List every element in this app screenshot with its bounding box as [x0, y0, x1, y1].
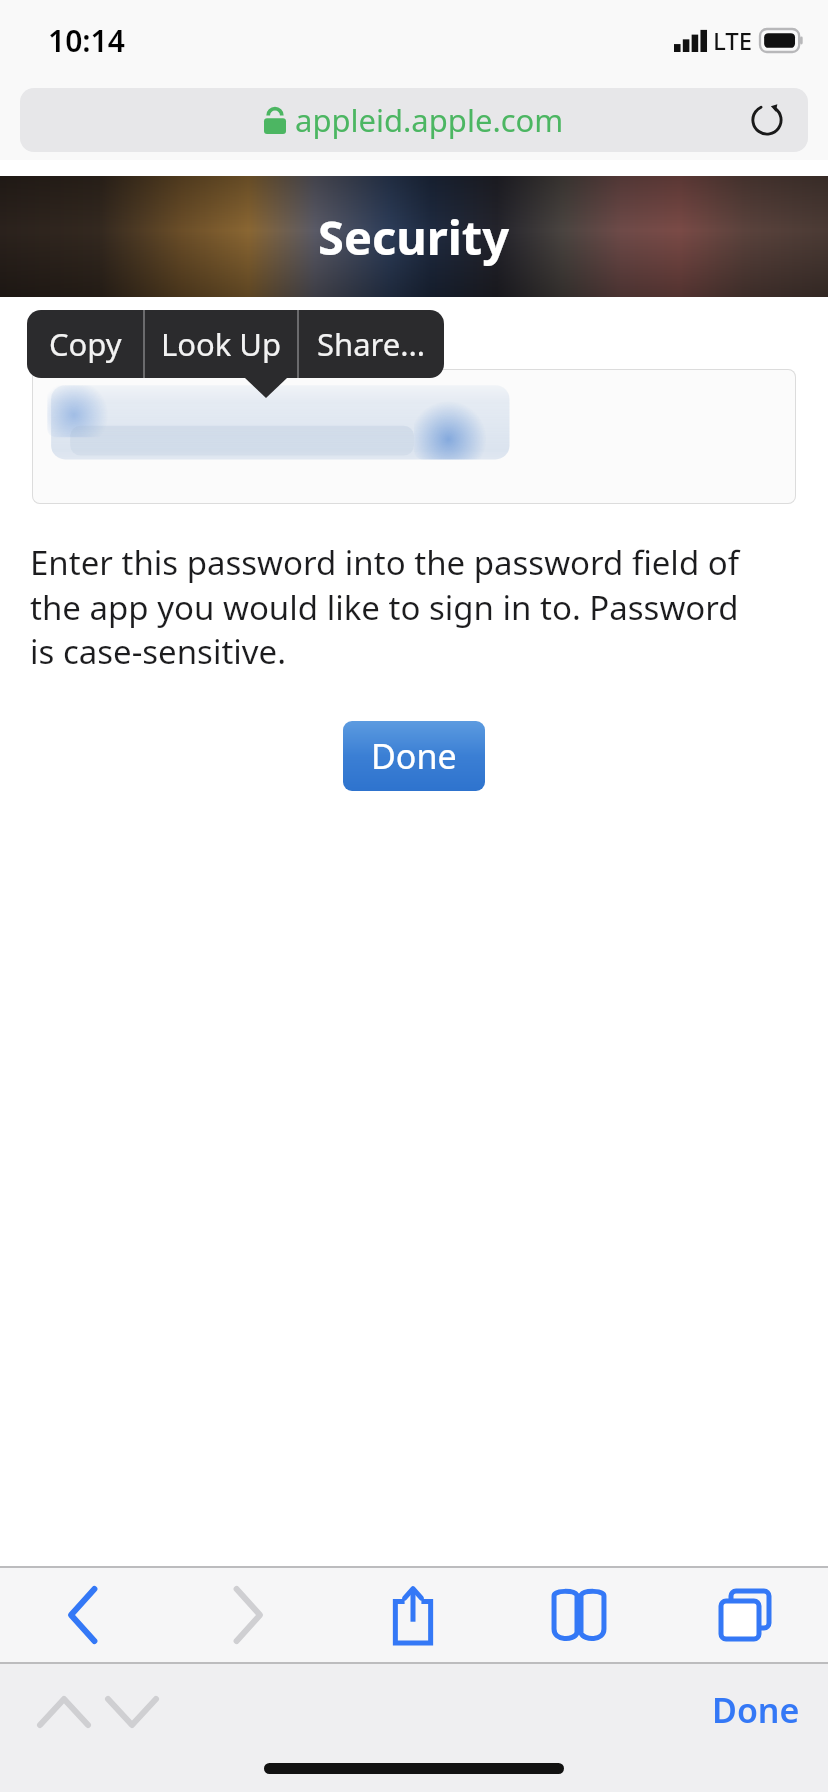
staticText: Look Up	[161, 323, 282, 365]
staticText: Security	[318, 205, 510, 269]
button[interactable]: Look Up	[145, 310, 297, 378]
button[interactable]: Back	[0, 1568, 165, 1662]
button[interactable]: Copy	[27, 310, 143, 378]
staticText: Enter this password into the password fi…	[30, 540, 768, 673]
button[interactable]: appleid.apple.com	[20, 88, 808, 152]
staticText: 10:14	[48, 20, 125, 61]
button[interactable]: Tabs	[662, 1568, 828, 1662]
button[interactable]: Previous	[30, 1678, 98, 1746]
button[interactable]: Reload	[744, 97, 790, 143]
staticText: Copy	[49, 323, 122, 365]
staticText: Done	[371, 733, 457, 779]
button[interactable]: Share	[330, 1568, 496, 1662]
button[interactable]: Next	[98, 1678, 166, 1746]
button[interactable]: Done	[343, 721, 485, 791]
staticText: Done	[712, 1687, 800, 1733]
staticText: Share...	[317, 323, 426, 365]
button[interactable]: Forward	[165, 1568, 330, 1662]
staticText: appleid.apple.com	[295, 99, 564, 141]
button[interactable]	[32, 369, 796, 504]
button[interactable]: Bookmarks	[496, 1568, 662, 1662]
button[interactable]: Share...	[299, 310, 444, 378]
button[interactable]: Done	[712, 1674, 800, 1746]
staticText: LTE	[713, 24, 753, 57]
